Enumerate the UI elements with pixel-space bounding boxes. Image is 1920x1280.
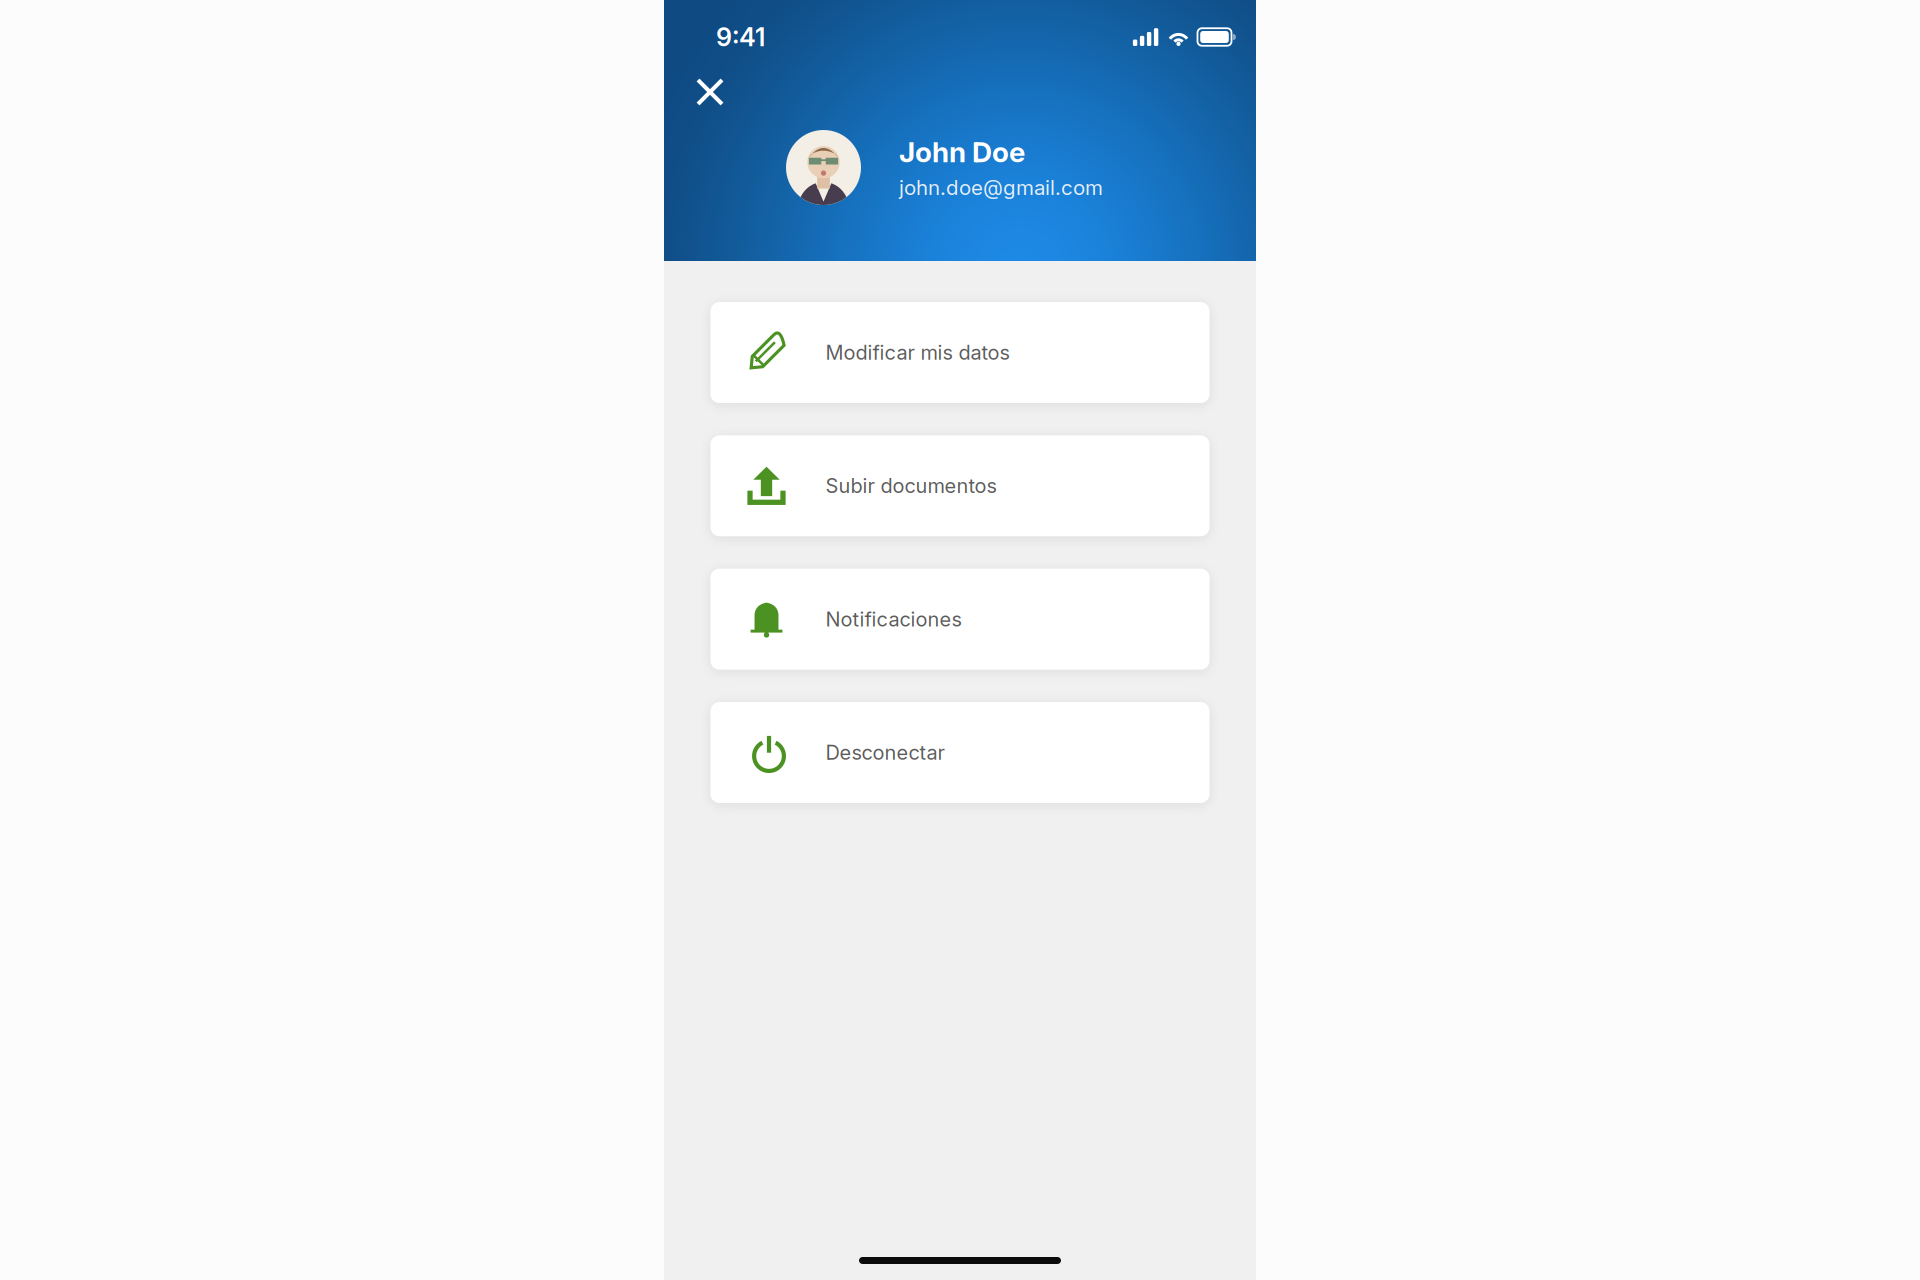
staticText: 9:41 (716, 22, 765, 52)
staticText: John Doe (899, 135, 1025, 169)
button[interactable]: Modificar mis datos (710, 302, 1209, 403)
button[interactable]: Desconectar (710, 702, 1209, 803)
button[interactable]: Notificaciones (710, 569, 1209, 670)
button[interactable]: Close (686, 68, 734, 116)
staticText: john.doe@gmail.com (899, 175, 1103, 200)
staticText: Desconectar (825, 740, 944, 765)
button[interactable]: Subir documentos (710, 435, 1209, 536)
staticText: Subir documentos (825, 474, 996, 498)
staticText: Modificar mis datos (825, 340, 1009, 365)
staticText: Notificaciones (825, 607, 961, 631)
